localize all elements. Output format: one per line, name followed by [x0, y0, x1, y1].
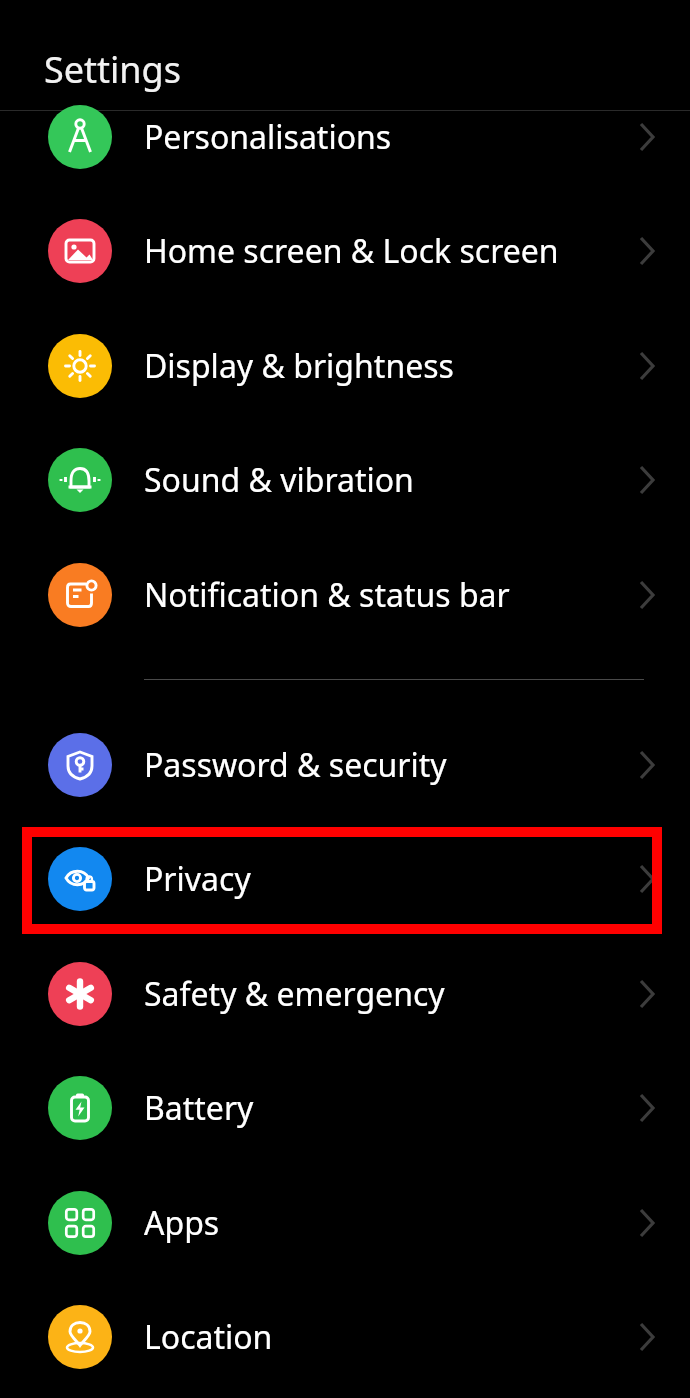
button[interactable]: Safety & emergency [0, 937, 690, 1051]
other: Password & security [622, 741, 670, 789]
staticText: Location [144, 1315, 273, 1359]
other: Notification & status bar [622, 571, 670, 619]
staticText: Privacy [144, 857, 251, 901]
button[interactable]: Display & brightness [0, 309, 690, 423]
staticText: Safety & emergency [144, 972, 445, 1016]
staticText: Password & security [144, 743, 447, 787]
button[interactable]: Home screen & Lock screen [0, 194, 690, 308]
button[interactable]: Password & security [0, 708, 690, 822]
staticText: Notification & status bar [144, 573, 510, 617]
staticText: Home screen & Lock screen [144, 229, 559, 273]
button[interactable]: Battery [0, 1051, 690, 1165]
staticText: Display & brightness [144, 344, 454, 388]
staticText: Sound & vibration [144, 458, 414, 502]
other: Privacy [622, 855, 670, 903]
button[interactable]: Notification & status bar [0, 538, 690, 652]
other: Home screen & Lock screen [622, 227, 670, 275]
button[interactable]: Personalisations [0, 80, 690, 194]
other: Display & brightness [622, 342, 670, 390]
staticText: Apps [144, 1201, 220, 1245]
other: Personalisations [622, 113, 670, 161]
staticText: Battery [144, 1086, 254, 1130]
other: Battery [622, 1084, 670, 1132]
staticText: Personalisations [144, 115, 392, 159]
staticText: Settings [44, 45, 181, 94]
button[interactable]: Apps [0, 1166, 690, 1280]
other: Safety & emergency [622, 970, 670, 1018]
button[interactable]: Sound & vibration [0, 423, 690, 537]
button[interactable]: Privacy [0, 822, 690, 936]
other: Location [622, 1313, 670, 1361]
other: Apps [622, 1199, 670, 1247]
button[interactable]: Location [0, 1280, 690, 1394]
other: Sound & vibration [622, 456, 670, 504]
